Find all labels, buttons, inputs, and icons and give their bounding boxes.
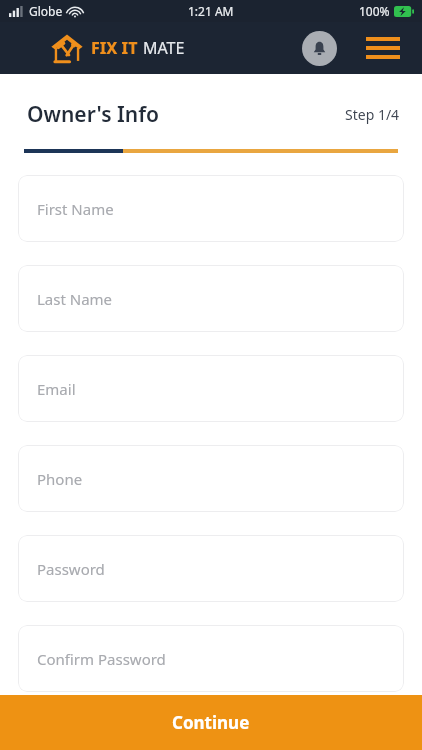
- button[interactable]: Confirm Password: [18, 625, 404, 692]
- button[interactable]: FIX IT: [50, 31, 185, 65]
- button[interactable]: Notifications: [302, 31, 337, 66]
- staticText: 100%: [359, 3, 390, 19]
- staticText: Confirm Password: [37, 649, 166, 669]
- staticText: 1:21 AM: [188, 3, 234, 19]
- staticText: Continue: [172, 711, 250, 734]
- button[interactable]: Password: [18, 535, 404, 602]
- staticText: Step 1/4: [345, 105, 400, 124]
- staticText: Password: [37, 559, 105, 579]
- staticText: Email: [37, 379, 76, 399]
- button[interactable]: Email: [18, 355, 404, 422]
- button[interactable]: First Name: [18, 175, 404, 242]
- button[interactable]: Phone: [18, 445, 404, 512]
- staticText: Owner's Info: [27, 100, 159, 129]
- staticText: Phone: [37, 469, 83, 489]
- staticText: Last Name: [37, 289, 113, 309]
- staticText: Globe: [29, 3, 63, 19]
- staticText: FIX IT: [91, 37, 138, 59]
- button[interactable]: Menu: [366, 33, 400, 63]
- staticText: MATE: [143, 37, 185, 59]
- button[interactable]: Last Name: [18, 265, 404, 332]
- staticText: First Name: [37, 199, 114, 219]
- button[interactable]: Continue: [0, 695, 422, 750]
